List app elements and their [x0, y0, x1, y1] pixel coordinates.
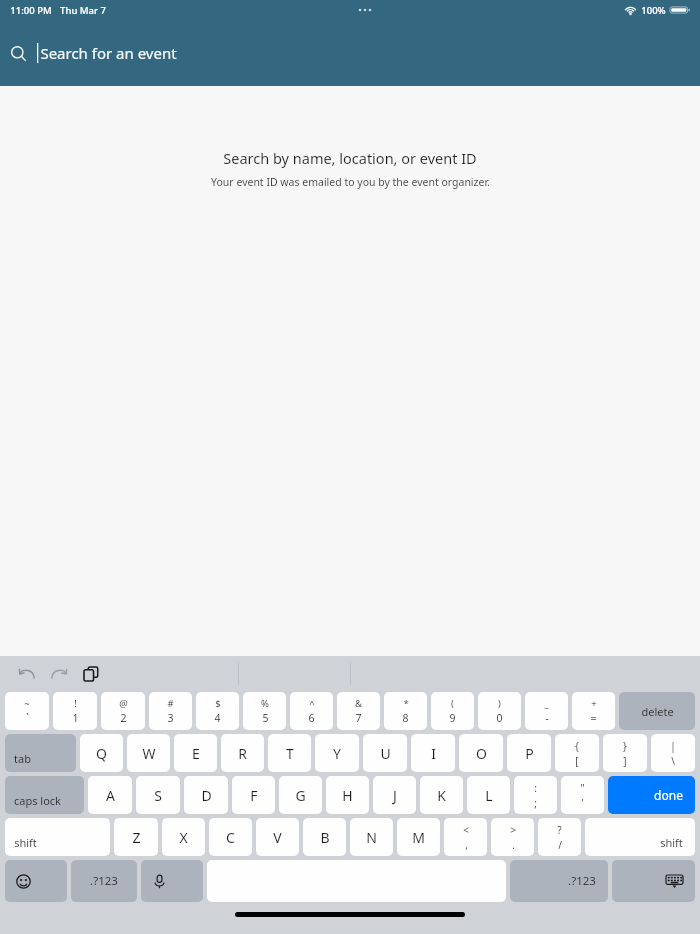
- button[interactable]: *: [384, 692, 427, 730]
- button[interactable]: R: [221, 734, 264, 772]
- button[interactable]: K: [420, 776, 463, 814]
- button[interactable]: done: [608, 776, 695, 814]
- button[interactable]: Emoji: [5, 860, 67, 902]
- button[interactable]: caps lock: [5, 776, 84, 814]
- staticText: [: [575, 754, 579, 768]
- button[interactable]: J: [373, 776, 416, 814]
- button[interactable]: +: [572, 692, 615, 730]
- staticText: 8: [402, 711, 409, 725]
- button[interactable]: T: [268, 734, 311, 772]
- button[interactable]: %: [243, 692, 286, 730]
- staticText: =: [590, 711, 597, 725]
- button[interactable]: Z: [114, 818, 158, 856]
- button[interactable]: #: [149, 692, 192, 730]
- staticText: K: [437, 786, 446, 805]
- staticText: G: [295, 786, 306, 805]
- staticText: D: [201, 786, 212, 805]
- button[interactable]: Voice input: [141, 860, 203, 902]
- staticText: 2: [120, 711, 127, 725]
- staticText: ~: [24, 697, 30, 710]
- button[interactable]: @: [101, 692, 145, 730]
- button[interactable]: C: [209, 818, 252, 856]
- staticText: ,: [465, 838, 468, 852]
- button[interactable]: F: [232, 776, 275, 814]
- staticText: Thu Mar 7: [60, 4, 106, 17]
- staticText: N: [366, 828, 377, 847]
- button[interactable]: !: [53, 692, 97, 730]
- button[interactable]: D: [184, 776, 228, 814]
- staticText: shift: [14, 835, 37, 850]
- staticText: L: [485, 786, 493, 805]
- button[interactable]: M: [397, 818, 440, 856]
- staticText: Your event ID was emailed to you by the …: [211, 175, 490, 189]
- button[interactable]: W: [127, 734, 170, 772]
- button[interactable]: O: [459, 734, 503, 772]
- staticText: :: [534, 781, 537, 795]
- button[interactable]: .?123: [71, 860, 137, 902]
- staticText: F: [250, 786, 258, 805]
- button[interactable]: ?: [538, 818, 581, 856]
- staticText: Search by name, location, or event ID: [223, 148, 477, 168]
- button[interactable]: G: [279, 776, 322, 814]
- staticText: done: [654, 787, 683, 803]
- staticText: Z: [132, 828, 141, 847]
- staticText: ]: [623, 754, 627, 768]
- button[interactable]: L: [467, 776, 510, 814]
- button[interactable]: ): [478, 692, 521, 730]
- button[interactable]: Undo: [14, 661, 40, 687]
- staticText: B: [320, 828, 330, 847]
- staticText: caps lock: [14, 793, 61, 808]
- button[interactable]: Y: [315, 734, 359, 772]
- staticText: U: [380, 744, 391, 763]
- staticText: delete: [641, 704, 674, 719]
- button[interactable]: shift: [585, 818, 695, 856]
- button[interactable]: }: [603, 734, 647, 772]
- button[interactable]: B: [303, 818, 346, 856]
- button[interactable]: Paste: [78, 661, 104, 687]
- button[interactable]: _: [525, 692, 568, 730]
- button[interactable]: P: [507, 734, 551, 772]
- button[interactable]: delete: [619, 692, 695, 730]
- button[interactable]: Q: [80, 734, 123, 772]
- staticText: `: [26, 711, 29, 725]
- staticText: Search for an event: [40, 43, 177, 63]
- button[interactable]: ^: [290, 692, 333, 730]
- staticText: 7: [355, 711, 362, 725]
- button[interactable]: Redo: [46, 661, 72, 687]
- staticText: Y: [333, 744, 341, 763]
- staticText: 6: [308, 711, 315, 725]
- staticText: shift: [660, 835, 683, 850]
- button[interactable]: &: [337, 692, 380, 730]
- button[interactable]: I: [411, 734, 455, 772]
- staticText: ?: [557, 823, 562, 837]
- button[interactable]: V: [256, 818, 299, 856]
- button[interactable]: (: [431, 692, 474, 730]
- button[interactable]: |: [651, 734, 695, 772]
- staticText: }: [623, 739, 627, 753]
- button[interactable]: S: [136, 776, 180, 814]
- button[interactable]: tab: [5, 734, 76, 772]
- button[interactable]: $: [196, 692, 239, 730]
- button[interactable]: E: [174, 734, 217, 772]
- button[interactable]: :: [514, 776, 557, 814]
- button[interactable]: Dismiss keyboard: [612, 860, 695, 902]
- button[interactable]: ": [561, 776, 604, 814]
- button[interactable]: N: [350, 818, 393, 856]
- button[interactable]: <: [444, 818, 487, 856]
- button[interactable]: X: [162, 818, 205, 856]
- button[interactable]: U: [363, 734, 407, 772]
- button[interactable]: H: [326, 776, 369, 814]
- staticText: .?123: [90, 873, 118, 889]
- button[interactable]: .?123: [510, 860, 608, 902]
- button[interactable]: shift: [5, 818, 110, 856]
- button[interactable]: A: [88, 776, 132, 814]
- staticText: R: [238, 744, 247, 763]
- staticText: _: [544, 697, 549, 710]
- button[interactable]: ~: [5, 692, 49, 730]
- button[interactable]: {: [555, 734, 599, 772]
- button[interactable]: Search: [10, 20, 700, 86]
- button[interactable]: >: [491, 818, 534, 856]
- staticText: (: [451, 697, 454, 710]
- staticText: 4: [214, 711, 221, 725]
